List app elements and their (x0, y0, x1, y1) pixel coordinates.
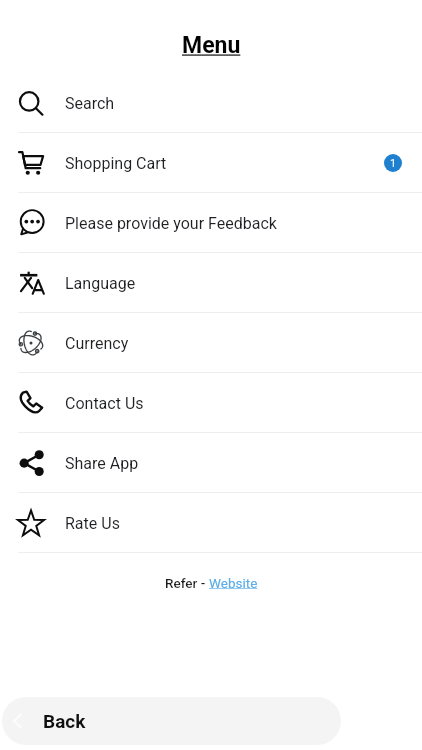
staticText: Language (65, 274, 136, 293)
button[interactable]: Shopping Cart (0, 133, 422, 193)
button[interactable]: Back (2, 697, 341, 745)
button[interactable]: Contact Us (0, 373, 422, 433)
staticText: Menu (182, 32, 241, 59)
staticText: 1 (390, 157, 397, 170)
staticText: Search (65, 94, 115, 113)
button[interactable]: Share App (0, 433, 422, 493)
staticText: Shopping Cart (65, 154, 167, 173)
button[interactable]: Language (0, 253, 422, 313)
staticText: Refer - (165, 575, 209, 591)
staticText: Back (43, 710, 86, 732)
staticText: Contact Us (65, 394, 144, 413)
staticText: Currency (65, 334, 129, 353)
staticText: Website (209, 575, 258, 591)
staticText: Please provide your Feedback (65, 214, 277, 233)
button[interactable]: Rate Us (0, 493, 422, 553)
staticText: Rate Us (65, 514, 120, 533)
button[interactable]: Feedback (0, 193, 422, 253)
button[interactable]: Search (0, 73, 422, 133)
button[interactable]: Website (209, 575, 258, 591)
button[interactable]: Currency (0, 313, 422, 373)
staticText: Share App (65, 454, 139, 473)
